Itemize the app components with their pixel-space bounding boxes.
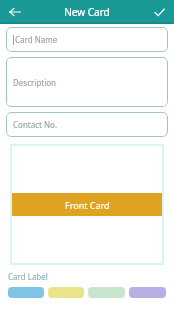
staticText: Front Card xyxy=(65,199,110,211)
button[interactable]: Back xyxy=(6,3,24,21)
staticText: Description xyxy=(13,77,57,88)
button[interactable]: Save xyxy=(150,3,168,21)
button[interactable]: Front Card xyxy=(12,193,162,216)
button[interactable]: Card Name xyxy=(6,27,168,52)
staticText: Card Label xyxy=(8,271,48,282)
button[interactable]: Card label colour 2 xyxy=(48,287,84,298)
button[interactable]: Card label colour 3 xyxy=(88,287,125,298)
button[interactable]: Card label colour 1 xyxy=(8,287,44,298)
button[interactable]: Front Card xyxy=(12,146,162,263)
button[interactable]: Contact No. xyxy=(6,112,168,137)
staticText: New Card xyxy=(64,5,110,19)
staticText: Contact No. xyxy=(13,119,58,130)
button[interactable]: Card label colour 4 xyxy=(129,287,166,298)
staticText: Card Name xyxy=(15,34,58,45)
button[interactable]: Description xyxy=(6,57,168,107)
